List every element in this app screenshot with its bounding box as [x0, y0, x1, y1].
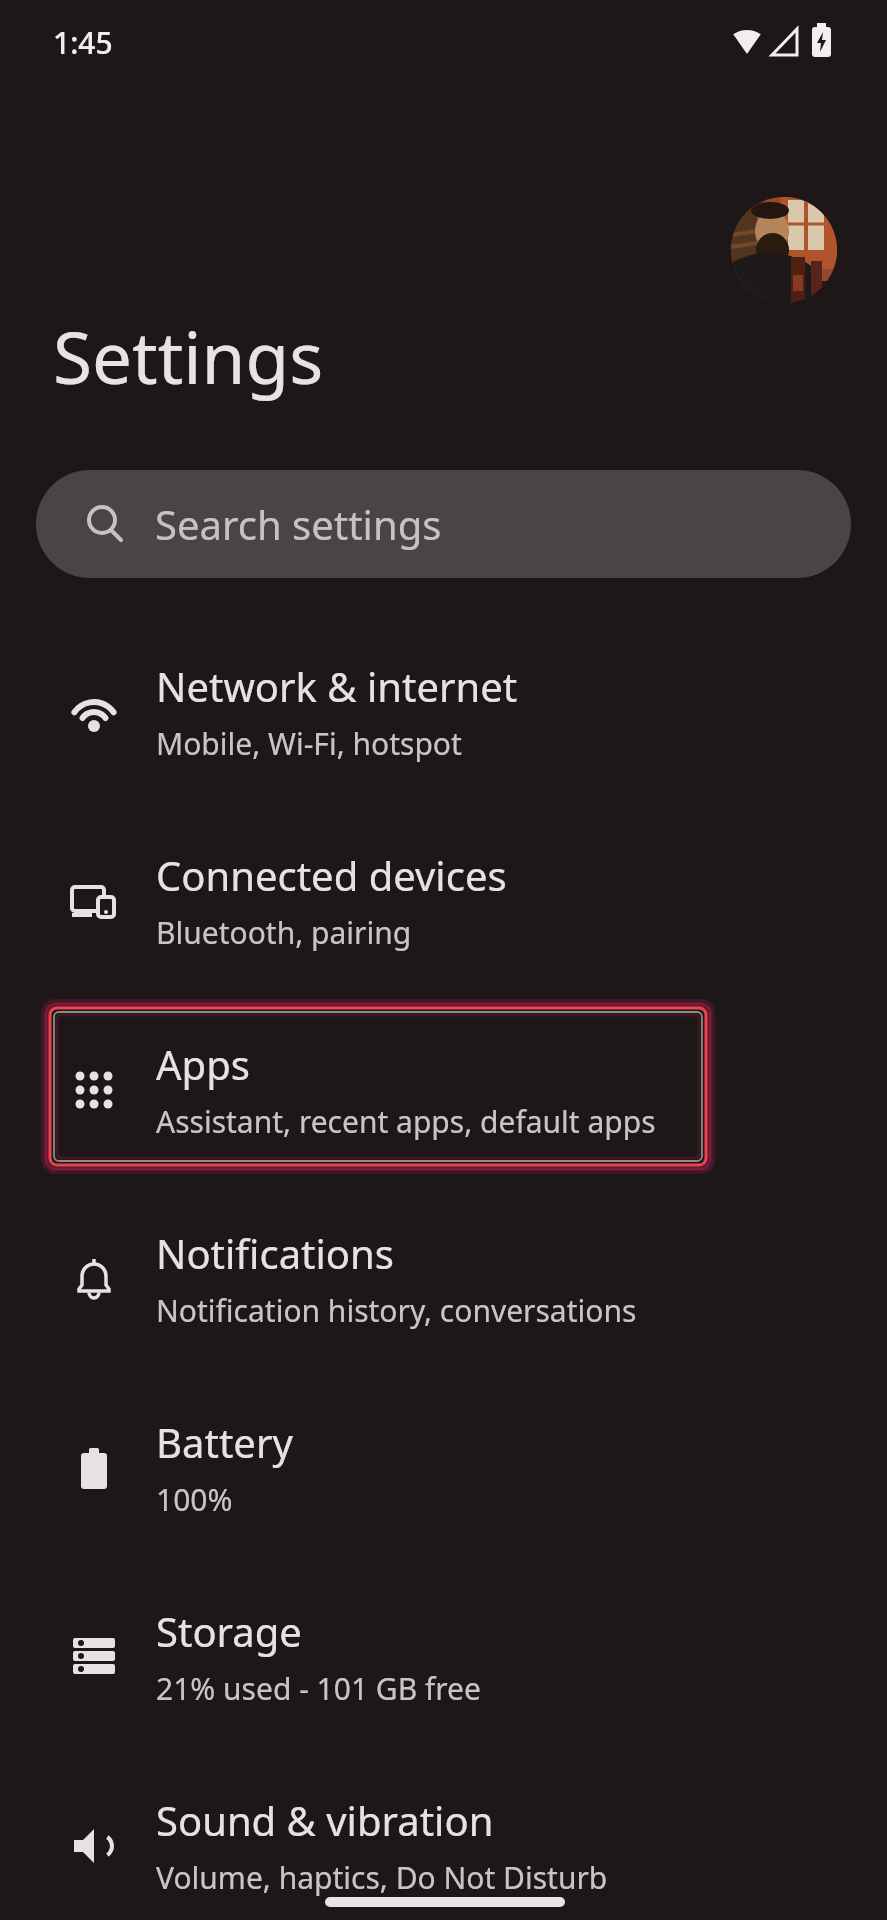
staticText: Storage [156, 1604, 302, 1658]
staticText: Bluetooth, pairing [156, 912, 412, 953]
button[interactable]: Sound & vibration [0, 1751, 887, 1920]
button[interactable]: Search settings [36, 470, 851, 578]
staticText: Battery [156, 1415, 293, 1469]
button[interactable]: Apps [0, 995, 887, 1184]
staticText: Network & internet [156, 659, 518, 713]
button[interactable]: Storage [0, 1562, 887, 1751]
button[interactable]: Connected devices [0, 806, 887, 995]
staticText: Mobile, Wi-Fi, hotspot [156, 723, 462, 764]
staticText: 21% used - 101 GB free [156, 1668, 481, 1709]
button[interactable]: Network & internet [0, 617, 887, 806]
staticText: Settings [53, 308, 324, 405]
staticText: Volume, haptics, Do Not Disturb [156, 1857, 608, 1898]
button[interactable]: Battery [0, 1373, 887, 1562]
staticText: 1:45 [53, 22, 113, 63]
staticText: 100% [156, 1479, 233, 1520]
button[interactable]: Notifications [0, 1184, 887, 1373]
staticText: Connected devices [156, 848, 507, 902]
staticText: Apps [156, 1037, 250, 1091]
staticText: Sound & vibration [156, 1793, 494, 1847]
staticText: Notification history, conversations [156, 1290, 637, 1331]
staticText: Search settings [155, 497, 442, 551]
staticText: Assistant, recent apps, default apps [156, 1101, 656, 1142]
button[interactable] [731, 197, 837, 303]
staticText: Notifications [156, 1226, 394, 1280]
